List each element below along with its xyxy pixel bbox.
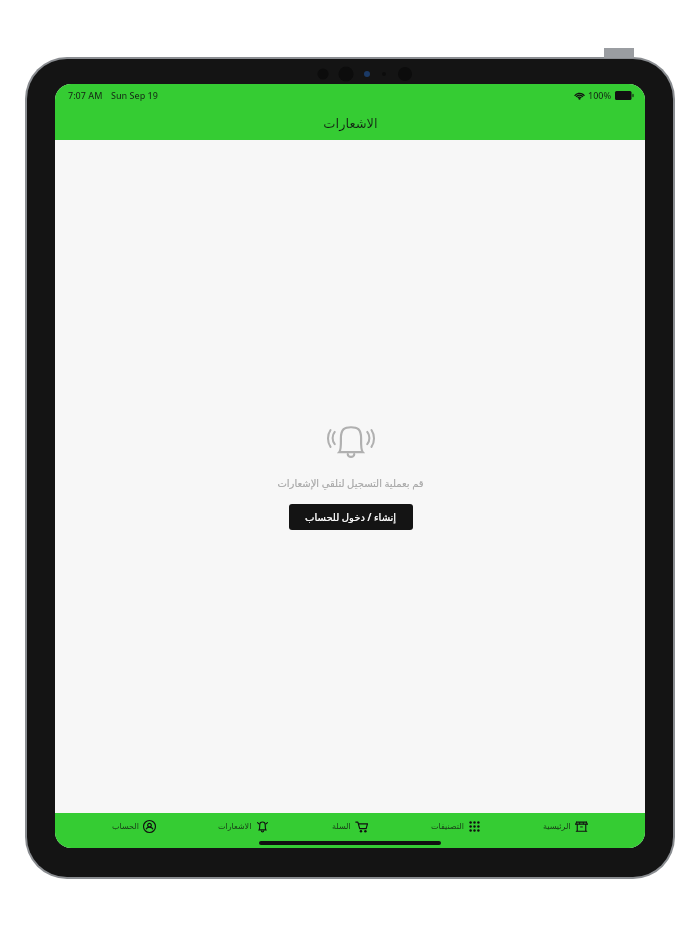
button[interactable]: التصنيفات	[425, 817, 487, 836]
button[interactable]: السلة	[326, 817, 374, 836]
staticText: Sun Sep 19	[111, 89, 158, 101]
staticText: 7:07 AM	[68, 89, 103, 101]
staticText: الاشعارات	[323, 116, 378, 131]
staticText: الحساب	[112, 822, 139, 831]
button[interactable]: الحساب	[106, 817, 162, 836]
staticText: التصنيفات	[431, 822, 464, 831]
staticText: الاشعارات	[218, 822, 252, 831]
staticText: الرئيسية	[543, 822, 571, 831]
button[interactable]: الرئيسية	[537, 817, 594, 836]
staticText: إنشاء / دخول للحساب	[305, 510, 397, 524]
staticText: السلة	[332, 822, 351, 831]
button[interactable]: إنشاء / دخول للحساب	[289, 504, 413, 530]
button[interactable]: الاشعارات	[212, 817, 275, 836]
staticText: قم بعملية التسجيل لتلقي الإشعارات	[277, 476, 424, 490]
staticText: 100%	[588, 89, 612, 101]
